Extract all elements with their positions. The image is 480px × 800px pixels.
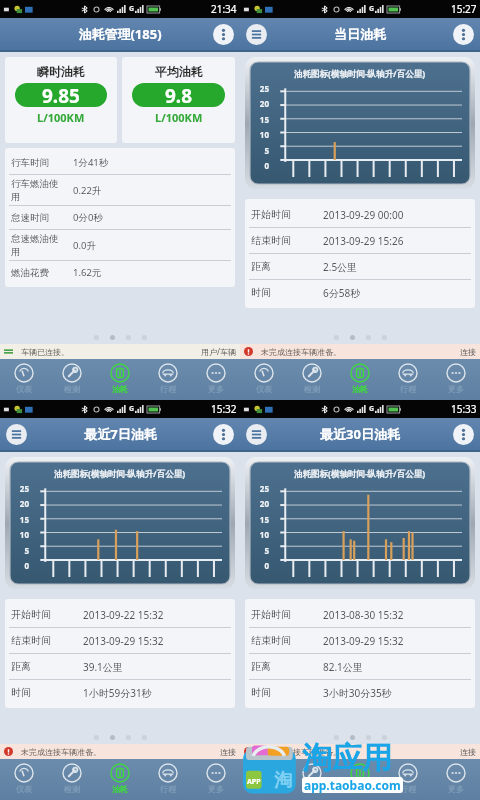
button[interactable]: 油耗 xyxy=(96,759,144,800)
staticText: 1分41秒 xyxy=(73,156,109,169)
button[interactable]: 行程 xyxy=(384,359,432,400)
staticText: 油耗图标(横轴时间-纵轴升/百公里) xyxy=(294,468,426,480)
button[interactable]: 仪表 xyxy=(240,359,288,400)
staticText: G xyxy=(129,404,135,414)
staticText: 检测 xyxy=(64,784,80,794)
button[interactable]: More options xyxy=(453,424,474,445)
button[interactable]: 时间 xyxy=(245,280,475,305)
staticText: 更多 xyxy=(208,384,224,394)
staticText: 开始时间 xyxy=(251,608,323,621)
button[interactable]: 油耗 xyxy=(336,359,384,400)
staticText: 15:27 xyxy=(451,2,477,16)
staticText: 5 xyxy=(254,145,269,156)
button[interactable]: 油耗 xyxy=(336,759,384,800)
staticText: 检测 xyxy=(64,384,80,394)
staticText: 20 xyxy=(14,498,29,509)
button[interactable]: 距离 xyxy=(245,254,475,279)
button[interactable]: 用户/车辆 xyxy=(201,346,236,357)
button[interactable]: 行车时间 xyxy=(5,151,235,174)
button[interactable]: 行车燃油使 用 xyxy=(5,175,235,205)
staticText: 2013-09-29 00:00 xyxy=(323,208,404,222)
button[interactable]: 结束时间 xyxy=(245,228,475,253)
button[interactable]: 时间 xyxy=(5,680,235,705)
button[interactable]: 更多 xyxy=(432,759,480,800)
button[interactable]: 更多 xyxy=(192,759,240,800)
button[interactable]: 更多 xyxy=(192,359,240,400)
staticText: 行程 xyxy=(160,384,176,394)
staticText: 82.1公里 xyxy=(323,660,363,674)
staticText: 时间 xyxy=(11,686,83,699)
staticText: 3小时30分35秒 xyxy=(323,686,392,700)
button[interactable]: 距离 xyxy=(5,654,235,679)
staticText: 10 xyxy=(254,529,269,540)
staticText: 10 xyxy=(254,129,269,140)
staticText: 10 xyxy=(14,529,29,540)
button[interactable]: 连接 xyxy=(220,747,236,757)
staticText: 距离 xyxy=(251,260,323,273)
button[interactable]: 仪表 xyxy=(240,759,288,800)
button[interactable]: 距离 xyxy=(245,654,475,679)
staticText: 当日油耗 xyxy=(334,26,386,42)
button[interactable]: More options xyxy=(213,24,234,45)
staticText: 行车时间 xyxy=(11,157,73,169)
staticText: 燃油花费 xyxy=(11,267,73,279)
button[interactable]: 瞬时油耗 xyxy=(5,57,117,143)
button[interactable]: 行程 xyxy=(144,759,192,800)
staticText: 5 xyxy=(254,545,269,556)
staticText: 行车燃油使 用 xyxy=(11,178,73,202)
staticText: 时间 xyxy=(251,686,323,699)
button[interactable]: 检测 xyxy=(288,759,336,800)
staticText: 未完成连接车辆准备。 xyxy=(261,347,341,357)
button[interactable]: More options xyxy=(453,24,474,45)
button[interactable]: 怠速时间 xyxy=(5,206,235,229)
staticText: 行程 xyxy=(400,384,416,394)
button[interactable]: 开始时间 xyxy=(5,602,235,627)
staticText: L/100KM xyxy=(155,110,203,125)
staticText: 25 xyxy=(254,83,269,94)
staticText: 油耗图标(横轴时间-纵轴升/百公里) xyxy=(294,68,426,80)
button[interactable]: 开始时间 xyxy=(245,202,475,227)
button[interactable]: 检测 xyxy=(288,359,336,400)
staticText: 15 xyxy=(254,514,269,525)
staticText: 21:34 xyxy=(211,2,237,16)
button[interactable]: 油耗 xyxy=(96,359,144,400)
button[interactable]: Menu xyxy=(246,24,267,45)
staticText: 9.8 xyxy=(165,83,193,107)
button[interactable]: 平均油耗 xyxy=(122,57,235,143)
staticText: 0.0升 xyxy=(73,239,96,252)
staticText: 25 xyxy=(254,483,269,494)
staticText: L/100KM xyxy=(37,110,85,125)
staticText: 油耗管理(185) xyxy=(78,25,162,43)
button[interactable]: 开始时间 xyxy=(245,602,475,627)
staticText: 连接 xyxy=(460,747,476,757)
button[interactable]: Menu xyxy=(6,424,27,445)
button[interactable]: 时间 xyxy=(245,680,475,705)
staticText: 开始时间 xyxy=(11,608,83,621)
button[interactable]: 仪表 xyxy=(0,359,48,400)
button[interactable]: 连接 xyxy=(460,347,476,357)
button[interactable]: More options xyxy=(213,424,234,445)
button[interactable]: 结束时间 xyxy=(5,628,235,653)
button[interactable]: 检测 xyxy=(48,759,96,800)
button[interactable]: 怠速燃油使 用 xyxy=(5,230,235,260)
staticText: 20 xyxy=(254,498,269,509)
staticText: 检测 xyxy=(304,784,320,794)
button[interactable]: Menu xyxy=(246,424,267,445)
button[interactable]: 检测 xyxy=(48,359,96,400)
staticText: 油耗 xyxy=(352,384,368,394)
button[interactable]: 仪表 xyxy=(0,759,48,800)
button[interactable]: 燃油花费 xyxy=(5,261,235,284)
staticText: 平均油耗 xyxy=(155,64,203,79)
button[interactable]: 结束时间 xyxy=(245,628,475,653)
staticText: 仪表 xyxy=(16,384,32,394)
staticText: 结束时间 xyxy=(11,634,83,647)
button[interactable]: 更多 xyxy=(432,359,480,400)
button[interactable]: 连接 xyxy=(460,747,476,757)
button[interactable]: 行程 xyxy=(144,359,192,400)
button[interactable]: 行程 xyxy=(384,759,432,800)
staticText: 用户/车辆 xyxy=(201,346,236,357)
staticText: 2013-09-29 15:26 xyxy=(323,234,404,248)
staticText: 仪表 xyxy=(256,784,272,794)
staticText: 距离 xyxy=(11,660,83,673)
staticText: 淘 xyxy=(274,769,292,792)
